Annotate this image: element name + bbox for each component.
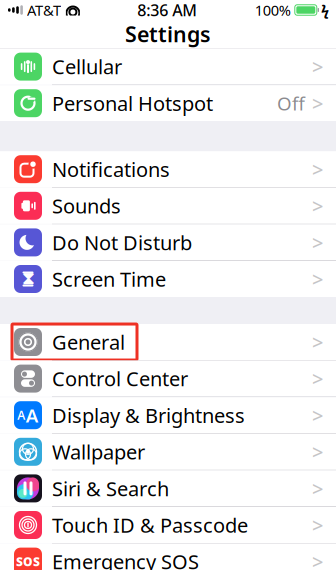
staticText: > <box>312 329 323 355</box>
button[interactable]: A <box>0 397 336 433</box>
staticText: Touch ID & Passcode <box>52 512 248 538</box>
button[interactable]: ⧗ <box>0 261 336 297</box>
staticText: 8:36 AM <box>137 0 197 21</box>
staticText: > <box>312 229 323 256</box>
button[interactable]: Control Center <box>0 361 336 397</box>
button[interactable]: General <box>0 324 336 360</box>
staticText: > <box>312 90 323 116</box>
staticText: > <box>312 266 323 292</box>
staticText: > <box>312 53 323 80</box>
staticText: Settings <box>125 20 211 48</box>
staticText: > <box>312 156 323 182</box>
staticText: > <box>312 365 323 392</box>
staticText: Display & Brightness <box>52 402 245 428</box>
staticText: Screen Time <box>52 266 166 292</box>
staticText: Sounds <box>52 192 121 219</box>
staticText: > <box>312 402 323 428</box>
staticText: > <box>312 475 323 502</box>
staticText: Emergency SOS <box>52 548 199 570</box>
staticText: Personal Hotspot <box>52 90 213 116</box>
staticText: ϟ <box>321 0 329 20</box>
button[interactable]: Cellular <box>0 49 336 85</box>
staticText: Siri & Search <box>52 475 169 502</box>
button[interactable]: Siri & Search <box>0 470 336 506</box>
button[interactable]: Do Not Disturb <box>0 224 336 260</box>
staticText: > <box>312 192 323 219</box>
button[interactable]: Personal Hotspot <box>0 85 336 121</box>
staticText: A <box>26 403 39 428</box>
staticText: Cellular <box>52 53 122 80</box>
staticText: Do Not Disturb <box>52 229 192 256</box>
staticText: 100% <box>255 0 291 20</box>
staticText: SOS <box>16 554 40 569</box>
staticText: ⧗ <box>22 270 34 287</box>
button[interactable]: Notifications <box>0 151 336 187</box>
staticText: > <box>312 438 323 465</box>
staticText: AT&T <box>27 0 61 20</box>
button[interactable]: Touch ID & Passcode <box>0 507 336 543</box>
staticText: Off <box>277 91 305 116</box>
staticText: Control Center <box>52 365 188 392</box>
staticText: Notifications <box>52 156 170 182</box>
staticText: General <box>52 329 125 355</box>
staticText: Wallpaper <box>52 438 145 465</box>
staticText: A <box>17 407 25 423</box>
button[interactable]: Wallpaper <box>0 434 336 470</box>
staticText: > <box>312 548 323 570</box>
button[interactable]: SOS <box>0 544 336 570</box>
button[interactable]: Sounds <box>0 188 336 224</box>
staticText: > <box>312 512 323 538</box>
